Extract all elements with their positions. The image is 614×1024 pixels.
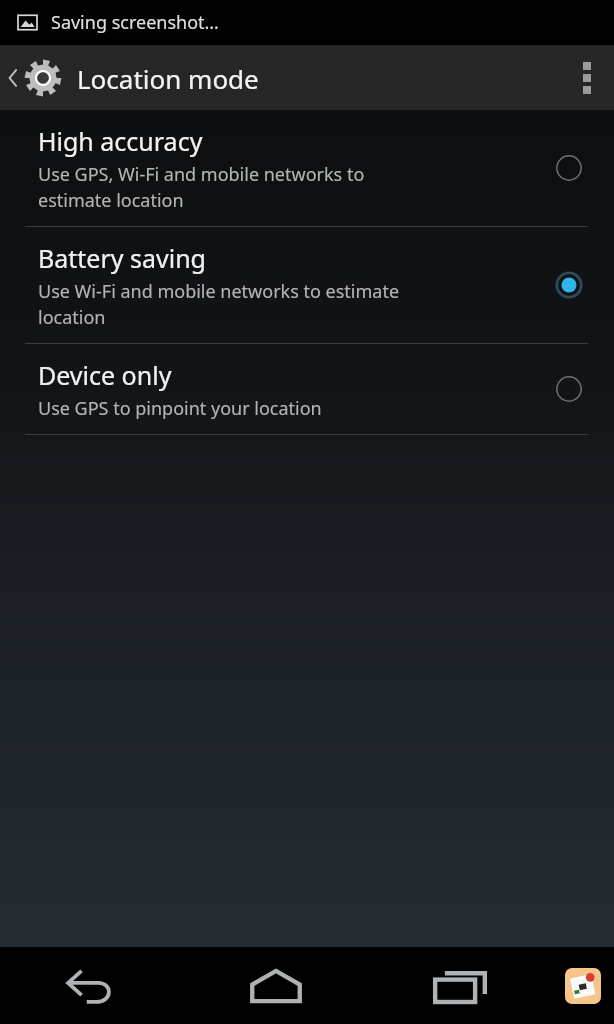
staticText: Battery saving: [38, 241, 206, 275]
button[interactable]: Open app: [552, 947, 614, 1024]
button[interactable]: High accuracy: [0, 110, 614, 226]
button[interactable]: Battery saving: [0, 227, 614, 343]
button[interactable]: Home: [184, 947, 368, 1024]
staticText: Use GPS, Wi-Fi and mobile networks to es…: [38, 162, 365, 213]
button[interactable]: Navigate up: [0, 58, 267, 98]
staticText: Use GPS to pinpoint your location: [38, 396, 322, 421]
staticText: Location mode: [77, 61, 259, 96]
staticText: High accuracy: [38, 124, 203, 158]
button[interactable]: Device only: [0, 344, 614, 434]
button[interactable]: Back: [0, 947, 184, 1024]
staticText: Device only: [38, 358, 172, 392]
button[interactable]: More options: [560, 45, 614, 110]
button[interactable]: Recent apps: [368, 947, 552, 1024]
staticText: Saving screenshot…: [51, 10, 219, 35]
staticText: Use Wi-Fi and mobile networks to estimat…: [38, 279, 400, 330]
